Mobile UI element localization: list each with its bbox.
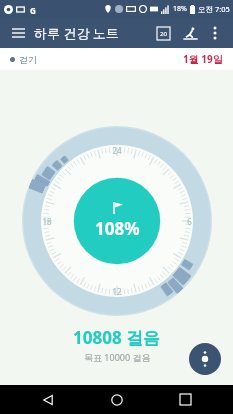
- button[interactable]: Walking activity: [179, 22, 201, 44]
- staticText: 12: [112, 286, 122, 297]
- button[interactable]: Calendar: [152, 22, 174, 44]
- staticText: 108%: [95, 217, 140, 240]
- staticText: 10808 걸음: [73, 326, 161, 349]
- button[interactable]: Menu: [8, 23, 28, 43]
- button[interactable]: Home: [97, 385, 137, 414]
- staticText: 24: [112, 145, 122, 156]
- staticText: 18%: [173, 4, 187, 14]
- button[interactable]: Back: [28, 385, 68, 414]
- staticText: G: [30, 5, 36, 14]
- button[interactable]: Recent apps: [165, 385, 205, 414]
- button[interactable]: More actions: [189, 343, 221, 375]
- button[interactable]: More options: [205, 23, 225, 43]
- button[interactable]: 걷기: [10, 54, 37, 65]
- staticText: 걷기: [19, 54, 37, 65]
- staticText: 18: [42, 216, 52, 227]
- staticText: 오전 7:05: [198, 4, 230, 14]
- staticText: 목표 10000 걸음: [84, 351, 151, 363]
- staticText: 1월 19일: [183, 52, 223, 66]
- staticText: 6: [187, 216, 192, 227]
- staticText: 하루 건강 노트: [34, 24, 119, 42]
- staticText: 20: [160, 30, 167, 38]
